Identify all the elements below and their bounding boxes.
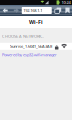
button[interactable]: Address bar	[22, 7, 52, 14]
staticText: CHOOSE A NETWORK...	[2, 33, 44, 39]
staticText: Sunrise_1.6041_5EA3A8	[10, 44, 52, 49]
staticText: Wi-Fi	[29, 18, 43, 26]
staticText: Powered by esp32-wifi-manager	[2, 52, 57, 57]
button[interactable]: Sunrise_1.6041_5EA3A8	[0, 43, 72, 50]
button[interactable]: Tabs	[53, 5, 63, 16]
button[interactable]: Forward	[11, 5, 22, 16]
button[interactable]: Bookmarks	[63, 5, 72, 16]
button[interactable]: Back	[0, 5, 11, 16]
staticText: 10:24	[61, 0, 70, 5]
staticText: 192.168.1.1	[23, 8, 42, 13]
